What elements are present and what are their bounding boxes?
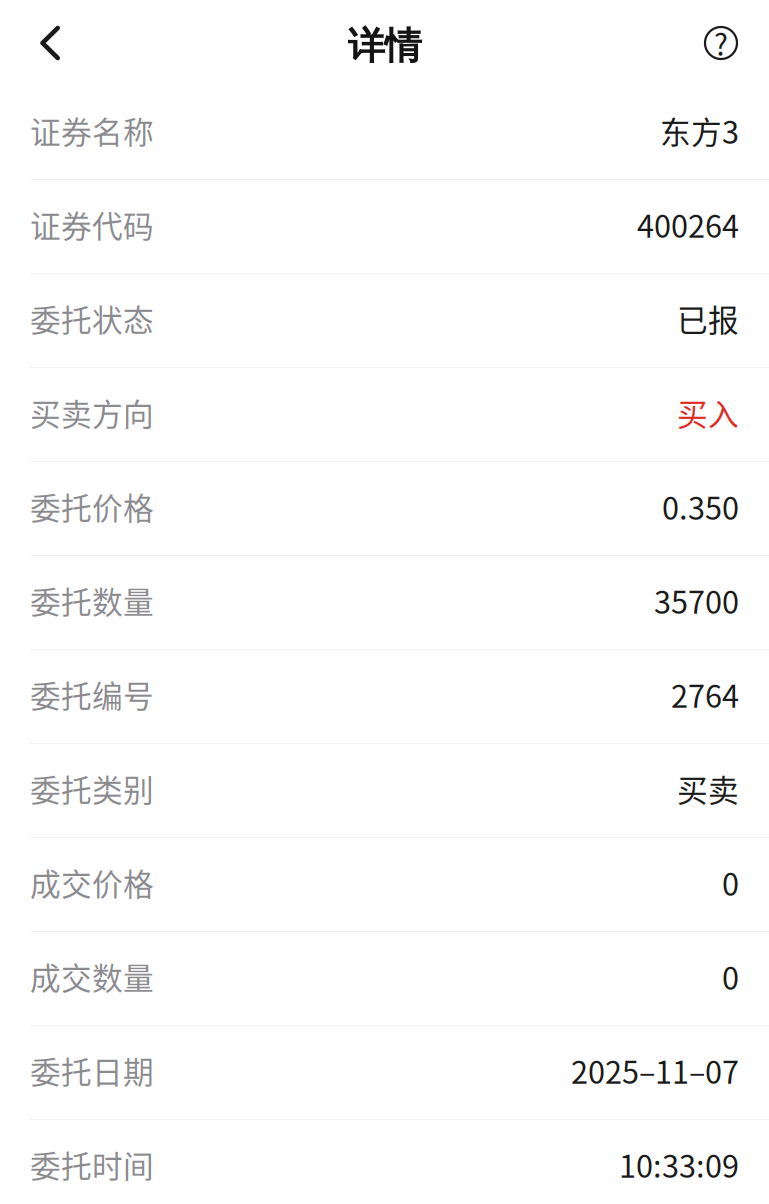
staticText: ?: [714, 22, 728, 64]
staticText: 详情: [347, 22, 421, 69]
staticText: 委托日期: [30, 1048, 154, 1093]
staticText: 0: [722, 954, 739, 999]
staticText: 10:33:09: [619, 1142, 739, 1187]
staticText: 成交价格: [30, 860, 154, 905]
staticText: 委托状态: [30, 296, 154, 341]
staticText: 委托数量: [30, 578, 154, 623]
staticText: 35700: [654, 578, 739, 623]
staticText: 证券代码: [30, 202, 154, 247]
staticText: 东方3: [660, 108, 739, 153]
staticText: 买卖方向: [30, 390, 154, 435]
staticText: 成交数量: [30, 954, 154, 999]
staticText: 0: [722, 860, 739, 905]
button[interactable]: Back: [19, 0, 81, 86]
staticText: 2025–11–07: [571, 1048, 739, 1093]
staticText: 400264: [637, 202, 739, 247]
staticText: 0.350: [662, 484, 739, 529]
button[interactable]: Help: [690, 0, 752, 86]
staticText: 委托编号: [30, 672, 154, 717]
staticText: 证券名称: [30, 108, 154, 153]
staticText: 委托价格: [30, 484, 154, 529]
staticText: 委托类别: [30, 766, 154, 811]
staticText: 已报: [677, 296, 739, 341]
staticText: 委托时间: [30, 1142, 154, 1187]
staticText: 买入: [677, 390, 739, 435]
staticText: 买卖: [677, 766, 739, 811]
staticText: 2764: [671, 672, 739, 717]
